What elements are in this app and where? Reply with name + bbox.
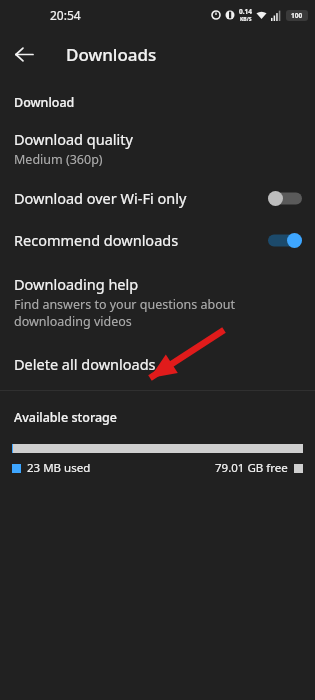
staticText: 23 MB used — [27, 460, 91, 476]
button[interactable]: Delete all downloads — [0, 334, 315, 380]
staticText: Download over Wi-Fi only — [14, 188, 268, 208]
staticText: 100 — [291, 11, 303, 20]
button[interactable]: Downloading help — [0, 256, 315, 334]
staticText: Medium (360p) — [14, 151, 103, 168]
staticText: 20:54 — [50, 7, 81, 23]
staticText: KB/S — [240, 16, 252, 23]
button[interactable]: Recommend downloads — [0, 214, 315, 256]
staticText: Recommend downloads — [14, 230, 268, 250]
staticText: Available storage — [14, 409, 117, 426]
button[interactable]: Download quality — [0, 111, 315, 172]
staticText: Downloading help — [14, 274, 139, 294]
staticText: Downloads — [66, 43, 157, 66]
button[interactable]: Download over Wi-Fi only — [0, 172, 315, 214]
staticText: 79.01 GB free — [215, 460, 288, 476]
staticText: Download — [14, 94, 75, 111]
staticText: Delete all downloads — [14, 354, 156, 374]
staticText: 0.14 — [239, 7, 252, 16]
staticText: Find answers to your questions about dow… — [14, 296, 301, 330]
staticText: Download quality — [14, 129, 133, 149]
button[interactable]: Back — [8, 38, 40, 70]
